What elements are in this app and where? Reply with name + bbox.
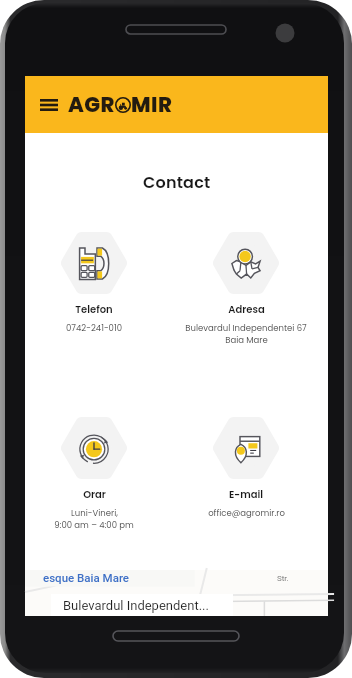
button[interactable]: Map bbox=[25, 570, 328, 616]
staticText: 0742-241-010 bbox=[66, 322, 122, 334]
button[interactable]: E-mail bbox=[170, 417, 322, 519]
staticText: Bulevardul Independent... bbox=[63, 598, 209, 613]
button[interactable]: Adresa bbox=[170, 232, 322, 346]
button[interactable]: AGR bbox=[68, 90, 173, 119]
button[interactable]: Bulevardul Independent... bbox=[51, 594, 233, 616]
staticText: 9:00 am – 4:00 pm bbox=[54, 519, 134, 531]
staticText: Luni-Vineri, bbox=[71, 507, 118, 519]
staticText: Adresa bbox=[228, 302, 265, 316]
staticText: Str. bbox=[277, 574, 289, 583]
staticText: AGR bbox=[68, 90, 115, 119]
staticText: Telefon bbox=[75, 302, 113, 316]
button[interactable]: Open menu bbox=[35, 91, 63, 119]
staticText: esque Baia Mare bbox=[43, 574, 129, 584]
staticText: MIR bbox=[131, 90, 173, 119]
staticText: E-mail bbox=[229, 487, 263, 501]
staticText: Baia Mare bbox=[225, 334, 268, 346]
button[interactable]: Telefon bbox=[18, 232, 170, 334]
staticText: Contact bbox=[143, 171, 211, 193]
staticText: Orar bbox=[83, 487, 106, 501]
staticText: office@agromir.ro bbox=[208, 507, 285, 519]
button[interactable]: Orar bbox=[18, 417, 170, 531]
staticText: Bulevardul Independentei 67 bbox=[185, 322, 307, 334]
